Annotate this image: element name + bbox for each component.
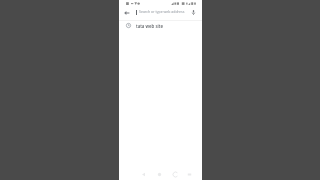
button[interactable]: Back [119, 5, 134, 20]
button[interactable]: Tabs [183, 168, 195, 180]
staticText: Search or type web address [139, 9, 185, 14]
staticText: tata web site [136, 23, 163, 29]
button[interactable]: Reload [169, 168, 181, 180]
button[interactable]: tata web site [119, 21, 202, 30]
button[interactable]: Search or type web address [134, 6, 186, 19]
button[interactable]: Voice search [186, 5, 201, 20]
button[interactable]: Home [153, 168, 165, 180]
button[interactable]: Back [137, 168, 149, 180]
